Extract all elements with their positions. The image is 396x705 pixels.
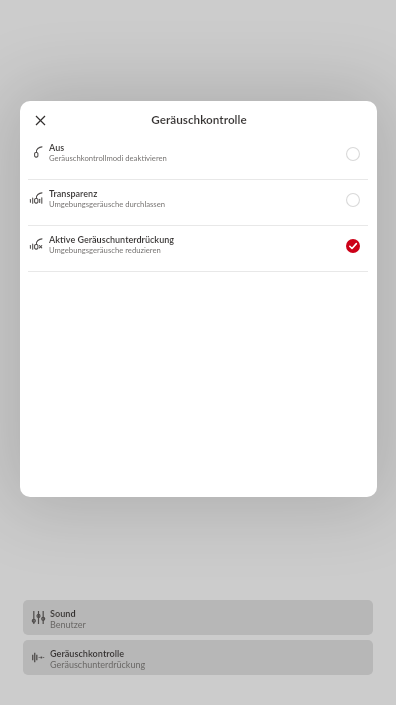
button[interactable]: Transparenz — [20, 180, 377, 225]
staticText: Benutzer — [50, 619, 86, 630]
button[interactable]: Aus — [20, 134, 377, 179]
button[interactable]: Geräuschkontrolle — [23, 640, 373, 675]
staticText: Geräuschunterdrückung — [50, 659, 146, 670]
staticText: Geräuschkontrolle — [50, 648, 125, 659]
button[interactable]: Schließen — [28, 108, 52, 132]
staticText: Umgebungsgeräusche reduzieren — [49, 245, 161, 254]
staticText: Aktive Geräuschunterdrückung — [49, 234, 175, 245]
staticText: Umgebungsgeräusche durchlassen — [49, 199, 166, 208]
button[interactable]: Sound — [23, 600, 373, 635]
button[interactable]: Aktive Geräuschunterdrückung — [20, 226, 377, 271]
staticText: Aus — [49, 142, 65, 153]
staticText: Geräuschkontrollmodi deaktivieren — [49, 153, 167, 162]
staticText: Transparenz — [49, 188, 98, 199]
staticText: Geräuschkontrolle — [151, 112, 247, 126]
staticText: Sound — [50, 608, 76, 619]
